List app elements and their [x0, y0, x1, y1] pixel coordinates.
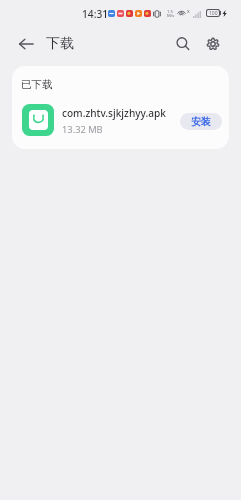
staticText: 下载	[46, 35, 74, 53]
button[interactable]: Settings	[199, 30, 227, 58]
button[interactable]: Back	[13, 31, 39, 57]
button[interactable]: Search	[169, 30, 197, 58]
staticText: 13.32 MB	[62, 123, 103, 136]
staticText: com.zhtv.sjkjzhyy.apk	[62, 106, 166, 120]
button[interactable]: com.zhtv.sjkjzhyy.apk	[22, 101, 222, 141]
staticText: 1.5 M/s	[167, 9, 175, 19]
button[interactable]: 安装	[180, 113, 222, 130]
staticText: 已下载	[21, 78, 53, 91]
staticText: 安装	[191, 116, 211, 128]
staticText: 14:31	[82, 7, 109, 21]
staticText: x	[187, 8, 190, 15]
staticText: 100	[209, 10, 218, 16]
